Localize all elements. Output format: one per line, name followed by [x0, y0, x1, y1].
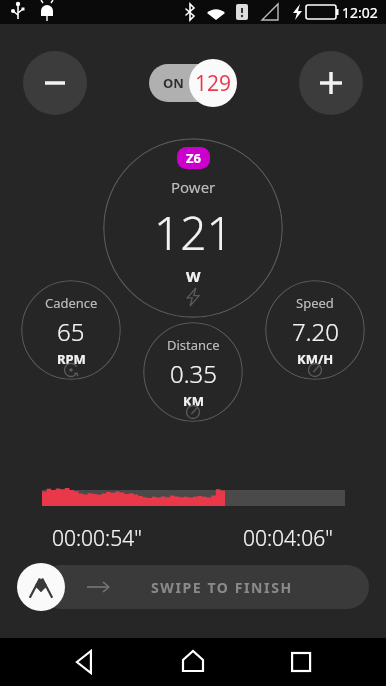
staticText: Z6 [186, 149, 201, 167]
button[interactable]: Z6 [103, 138, 283, 318]
staticText: Power [171, 177, 216, 197]
staticText: W [186, 266, 201, 286]
button[interactable]: Cadence [21, 280, 121, 380]
button[interactable]: Speed [265, 280, 365, 380]
staticText: 0.35 [170, 357, 217, 390]
staticText: KM/H [297, 350, 334, 368]
staticText: Speed [296, 294, 334, 312]
staticText: Distance [167, 336, 220, 354]
staticText: 121 [154, 201, 233, 264]
staticText: 129 [195, 69, 232, 98]
staticText: ON [163, 74, 184, 92]
staticText: KM [183, 392, 204, 410]
staticText: 00:04:06" [243, 524, 333, 553]
button[interactable]: ON [149, 59, 237, 107]
staticText: Cadence [45, 294, 98, 312]
button[interactable]: SWIPE TO FINISH [17, 563, 369, 611]
other: Finish [17, 563, 65, 611]
button[interactable]: Decrease [23, 51, 87, 115]
staticText: 65 [57, 315, 85, 348]
staticText: 00:00:54" [52, 524, 142, 553]
button[interactable]: Increase [299, 51, 363, 115]
staticText: SWIPE TO FINISH [151, 578, 293, 597]
staticText: 7.20 [292, 315, 339, 348]
staticText: RPM [57, 350, 86, 368]
button[interactable]: Distance [143, 322, 243, 422]
staticText: 12:02 [342, 3, 378, 22]
